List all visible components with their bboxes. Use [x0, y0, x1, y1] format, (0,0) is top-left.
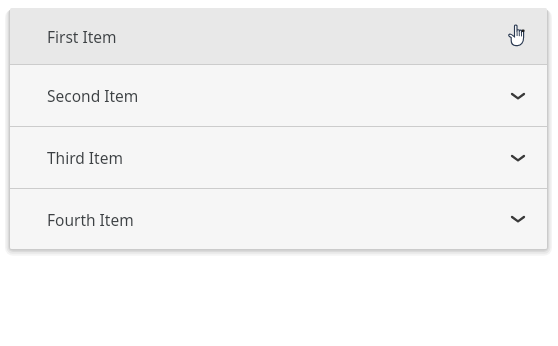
button[interactable]: Expand	[506, 146, 530, 170]
button[interactable]: Third Item	[10, 127, 547, 188]
staticText: Third Item	[47, 147, 123, 168]
button[interactable]: Collapse	[503, 21, 533, 51]
button[interactable]: First Item	[10, 8, 547, 64]
staticText: Fourth Item	[47, 209, 134, 230]
button[interactable]: Expand	[506, 84, 530, 108]
staticText: First Item	[47, 26, 117, 47]
staticText: Second Item	[47, 85, 139, 106]
button[interactable]: Second Item	[10, 65, 547, 126]
button[interactable]: Fourth Item	[10, 189, 547, 249]
button[interactable]: Expand	[506, 207, 530, 231]
